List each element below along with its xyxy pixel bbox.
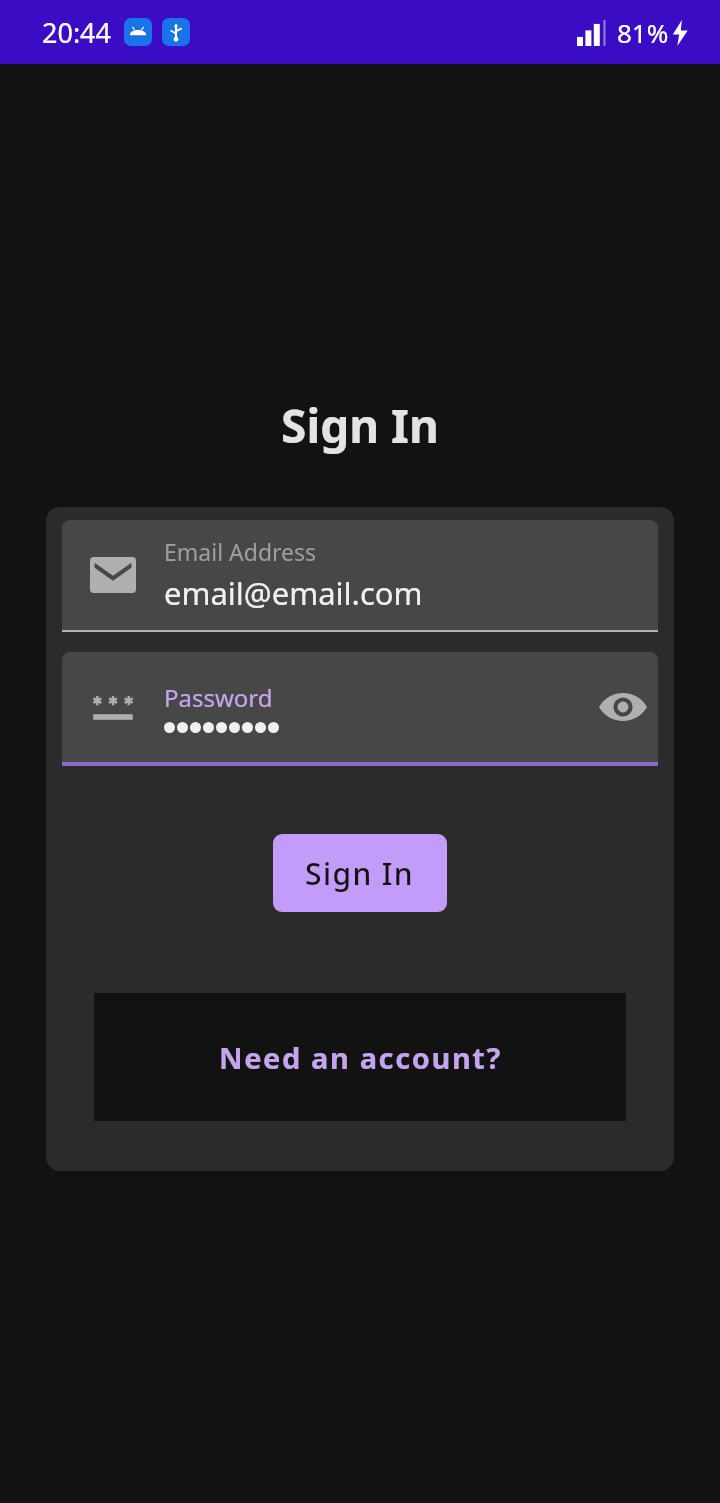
staticText: Sign In — [305, 853, 415, 894]
staticText: Password — [164, 681, 273, 714]
staticText: 81% — [617, 15, 669, 50]
staticText: Email Address — [164, 536, 317, 567]
staticText: email@email.com — [164, 572, 423, 614]
button[interactable]: Show password — [588, 672, 658, 742]
button[interactable]: Sign In — [273, 834, 447, 912]
staticText: 20:44 — [42, 14, 112, 51]
staticText: Need an account? — [219, 1038, 502, 1077]
button[interactable]: Password — [62, 652, 658, 766]
staticText: Sign In — [281, 394, 439, 457]
button[interactable]: Email Address — [62, 520, 658, 632]
button[interactable]: Need an account? — [94, 993, 626, 1121]
